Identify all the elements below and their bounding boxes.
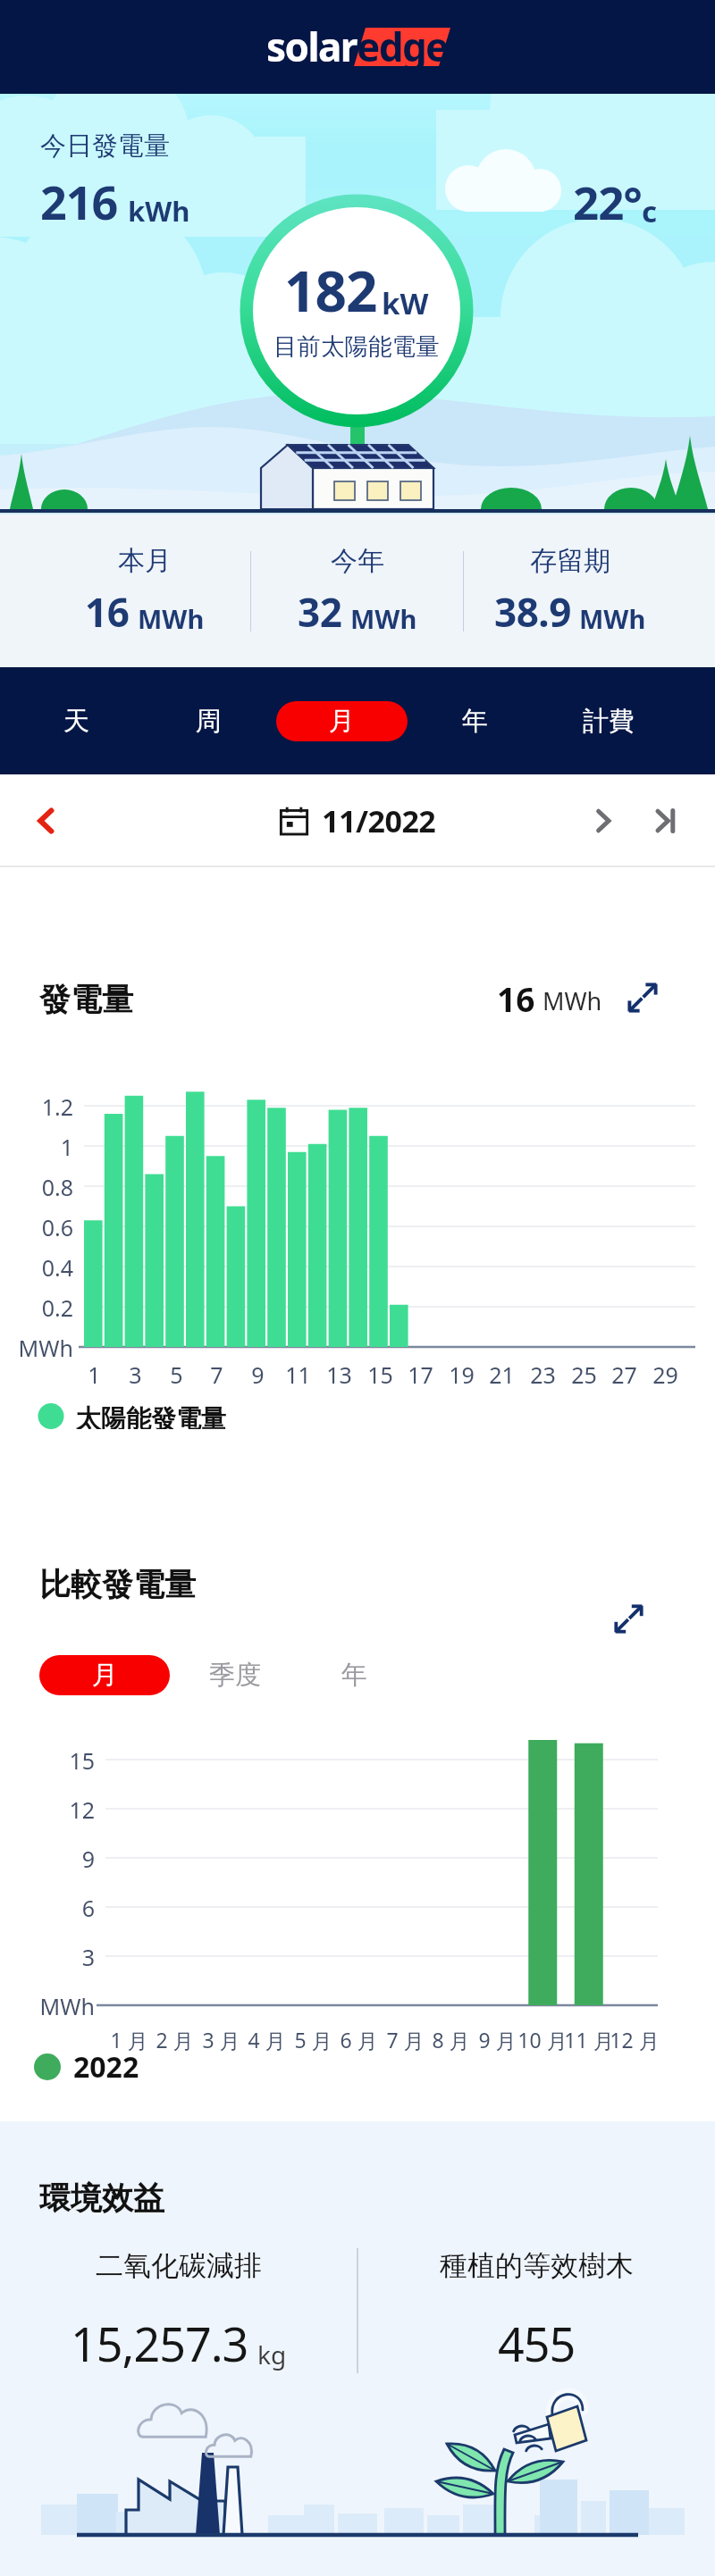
staticText: 種植的等效樹木 [440, 2248, 634, 2283]
staticText: 3 [129, 1359, 142, 1390]
staticText: 9 [81, 1844, 95, 1874]
staticText: 本月 [118, 544, 172, 578]
staticText: 計費 [583, 705, 635, 738]
staticText: 12 月 [610, 2026, 660, 2053]
staticText: 16 [497, 976, 535, 1019]
staticText: 發電量 [39, 980, 133, 1019]
button[interactable]: 月 [275, 667, 408, 774]
staticText: 10 月 [517, 2026, 568, 2053]
staticText: 216 [40, 170, 118, 233]
staticText: 11 月 [564, 2026, 614, 2053]
staticText: MWh [350, 601, 417, 636]
staticText: 25 [571, 1359, 597, 1390]
button[interactable]: 今年 [251, 514, 463, 667]
staticText: 今年 [331, 544, 384, 578]
staticText: 455 [498, 2312, 576, 2375]
staticText: solar [266, 20, 357, 73]
staticText: 0.8 [41, 1172, 73, 1202]
staticText: MWh [579, 601, 646, 636]
staticText: 1.2 [41, 1091, 73, 1122]
staticText: 27 [611, 1359, 637, 1390]
button[interactable]: Expand production chart [627, 983, 658, 1013]
staticText: 38.9 [494, 585, 571, 639]
staticText: 2022 [73, 2047, 139, 2087]
staticText: 3 月 [202, 2026, 240, 2053]
staticText: 19 [449, 1359, 475, 1390]
staticText: 1 月 [110, 2026, 148, 2053]
button[interactable]: Expand comparison chart [614, 1604, 643, 1634]
staticText: 6 [81, 1893, 95, 1923]
button[interactable]: 年 [408, 667, 542, 774]
button[interactable]: 本月 [39, 514, 250, 667]
staticText: 11/2022 [322, 800, 436, 841]
staticText: 4 月 [248, 2026, 286, 2053]
staticText: 5 月 [294, 2026, 332, 2053]
staticText: 0.2 [41, 1292, 73, 1323]
staticText: 17 [408, 1359, 433, 1390]
staticText: 月 [329, 705, 355, 738]
staticText: 1 [88, 1359, 101, 1390]
staticText: 0.6 [41, 1212, 73, 1242]
staticText: edge [357, 20, 448, 73]
staticText: 6 月 [340, 2026, 378, 2053]
staticText: MWh [39, 1991, 95, 2021]
staticText: 天 [63, 705, 89, 738]
staticText: kg [257, 2338, 287, 2371]
button[interactable]: Previous month [20, 794, 73, 848]
staticText: MWh [18, 1333, 73, 1363]
staticText: 13 [326, 1359, 352, 1390]
button[interactable]: 年 [300, 1655, 408, 1695]
staticText: 7 月 [386, 2026, 425, 2053]
staticText: 29 [652, 1359, 678, 1390]
staticText: 16 [85, 585, 130, 639]
staticText: 15 [69, 1745, 95, 1776]
staticText: 12 [69, 1794, 95, 1825]
button[interactable]: 周 [142, 667, 275, 774]
staticText: 182 [284, 253, 377, 328]
staticText: 3 [81, 1942, 95, 1972]
staticText: 今日發電量 [40, 130, 170, 163]
staticText: 5 [170, 1359, 183, 1390]
staticText: 15 [367, 1359, 393, 1390]
staticText: 7 [210, 1359, 223, 1390]
staticText: 年 [341, 1659, 367, 1692]
button[interactable]: 天 [10, 667, 142, 774]
button[interactable]: Next month [576, 794, 630, 848]
staticText: 環境效益 [39, 2179, 164, 2218]
button[interactable]: Latest month [639, 794, 693, 848]
staticText: 二氧化碳減排 [96, 2248, 262, 2283]
staticText: 太陽能發電量 [76, 1403, 226, 1429]
staticText: 15,257.3 [71, 2312, 248, 2375]
staticText: 11 [285, 1359, 311, 1390]
staticText: 比較發電量 [39, 1565, 196, 1604]
staticText: kW [382, 283, 429, 323]
staticText: 32 [298, 585, 342, 639]
staticText: 月 [92, 1659, 118, 1692]
staticText: 年 [462, 705, 488, 738]
staticText: 2 月 [156, 2026, 194, 2053]
staticText: 周 [196, 705, 222, 738]
button[interactable]: 季度 [170, 1655, 300, 1695]
button[interactable]: 計費 [542, 667, 675, 774]
staticText: c [642, 191, 658, 231]
staticText: 23 [530, 1359, 556, 1390]
staticText: 季度 [209, 1659, 261, 1692]
staticText: 21 [489, 1359, 515, 1390]
staticText: kWh [128, 192, 190, 230]
staticText: MWh [543, 984, 602, 1017]
staticText: MWh [138, 601, 205, 636]
staticText: 9 [251, 1359, 265, 1390]
button[interactable]: 月 [39, 1655, 170, 1695]
staticText: 存留期 [530, 544, 610, 578]
staticText: 目前太陽能電量 [273, 331, 440, 361]
staticText: 8 月 [432, 2026, 470, 2053]
staticText: 9 月 [478, 2026, 517, 2053]
staticText: 1 [60, 1132, 73, 1162]
button[interactable]: 存留期 [464, 514, 676, 667]
staticText: 22° [573, 171, 642, 232]
staticText: 0.4 [41, 1252, 73, 1283]
